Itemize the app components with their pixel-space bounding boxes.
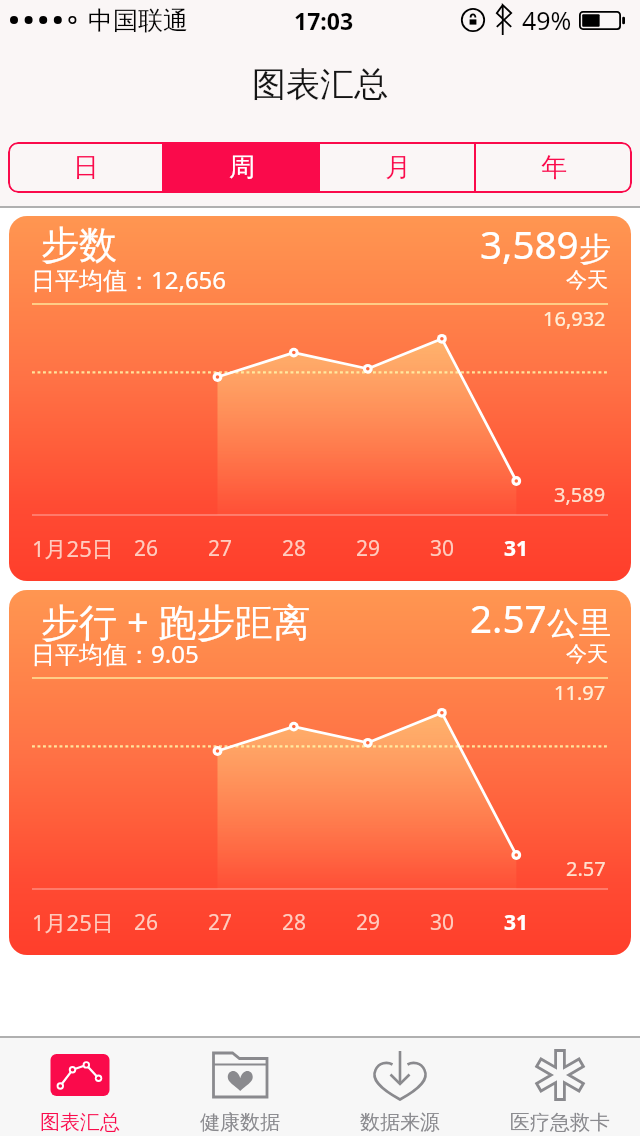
staticText: 健康数据	[200, 1110, 280, 1135]
staticText: 数据来源	[360, 1110, 440, 1135]
staticText: 31	[504, 908, 529, 937]
staticText: 26	[134, 534, 159, 563]
button[interactable]: 步数	[9, 216, 631, 581]
staticText: 步	[579, 229, 611, 269]
staticText: 11.97	[554, 679, 606, 706]
staticText: 年	[541, 151, 567, 184]
staticText: 27	[208, 908, 233, 937]
staticText: 17:03	[294, 5, 354, 36]
staticText: 日平均值：9.05	[31, 637, 199, 670]
staticText: 28	[282, 908, 307, 937]
staticText: 日	[73, 151, 99, 184]
staticText: 49%	[522, 3, 572, 37]
button[interactable]: 月	[320, 142, 476, 193]
staticText: 1月25日	[32, 533, 114, 563]
staticText: 26	[134, 908, 159, 937]
button[interactable]: Health Data	[160, 1038, 320, 1136]
staticText: 公里	[547, 603, 611, 643]
button[interactable]: 步行 + 跑步距离	[9, 590, 631, 955]
staticText: 日平均值：12,656	[31, 263, 227, 296]
button[interactable]: 周	[164, 142, 320, 193]
staticText: 今天	[566, 641, 608, 667]
staticText: 步行 + 跑步距离	[41, 595, 311, 647]
staticText: 16,932	[543, 305, 606, 332]
staticText: 3,589	[480, 218, 579, 271]
button[interactable]: 年	[476, 142, 632, 193]
staticText: 医疗急救卡	[510, 1110, 610, 1135]
button[interactable]: 日	[8, 142, 164, 193]
staticText: 周	[229, 151, 255, 184]
staticText: 步数	[41, 221, 117, 269]
staticText: 图表汇总	[40, 1110, 120, 1135]
staticText: 今天	[566, 267, 608, 293]
staticText: 中国联通	[88, 5, 188, 36]
staticText: 1月25日	[32, 907, 114, 937]
staticText: 29	[356, 534, 381, 563]
staticText: 27	[208, 534, 233, 563]
button[interactable]: Medical ID	[480, 1038, 640, 1136]
staticText: 30	[430, 908, 455, 937]
staticText: 2.57	[470, 592, 547, 645]
staticText: 29	[356, 908, 381, 937]
button[interactable]: Sources	[320, 1038, 480, 1136]
staticText: 图表汇总	[252, 63, 388, 106]
staticText: 3,589	[554, 481, 606, 508]
staticText: 31	[504, 534, 529, 563]
staticText: 2.57	[566, 855, 606, 882]
button[interactable]: Charts	[0, 1038, 160, 1136]
staticText: 30	[430, 534, 455, 563]
staticText: 月	[385, 151, 411, 184]
staticText: 28	[282, 534, 307, 563]
